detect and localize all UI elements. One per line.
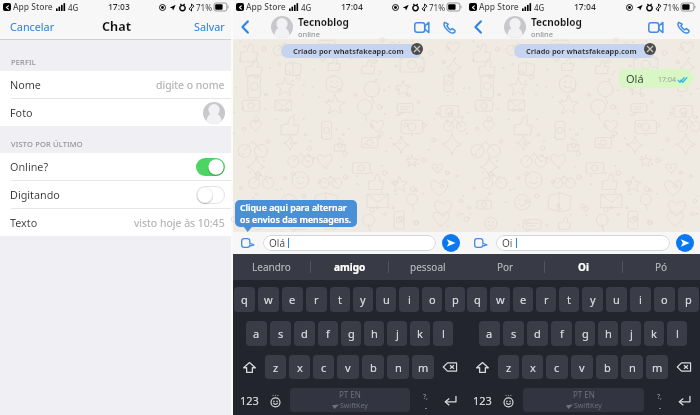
button[interactable]: Send	[676, 234, 694, 252]
button[interactable]: i	[630, 287, 651, 312]
button[interactable]: Toggle sender	[472, 236, 488, 250]
button[interactable]: t	[330, 287, 350, 312]
button[interactable]: Backspace	[434, 355, 466, 379]
button[interactable]: Symbols	[417, 392, 434, 409]
button[interactable]: Symbols	[651, 392, 668, 409]
button[interactable]: u	[606, 287, 627, 312]
button[interactable]: h	[364, 321, 384, 346]
button[interactable]: b	[362, 355, 384, 379]
button[interactable]: w	[258, 287, 279, 312]
button[interactable]: z	[265, 355, 286, 379]
button[interactable]: Backspace	[668, 355, 700, 379]
button[interactable]: Olá	[619, 69, 691, 88]
button[interactable]: o	[654, 287, 675, 312]
button[interactable]: Nome	[0, 71, 233, 98]
button[interactable]: e	[513, 287, 533, 312]
button[interactable]: Cancelar	[0, 15, 65, 38]
button[interactable]: m	[412, 355, 434, 379]
button[interactable]: j	[621, 321, 641, 346]
button[interactable]: Digitando	[0, 181, 233, 208]
button[interactable]: a	[246, 321, 267, 346]
button[interactable]: Texto	[0, 209, 233, 236]
button[interactable]: Voice call	[671, 15, 695, 39]
button[interactable]: PT EN	[523, 388, 644, 412]
button[interactable]: Enter	[673, 389, 695, 411]
button[interactable]: Enter	[439, 389, 461, 411]
button[interactable]: y	[582, 287, 603, 312]
button[interactable]: w	[490, 287, 510, 312]
button[interactable]: Foto	[0, 99, 233, 126]
button[interactable]: v	[571, 355, 593, 379]
button[interactable]: r	[536, 287, 556, 312]
button[interactable]: PT EN	[290, 388, 410, 412]
button[interactable]: m	[646, 355, 668, 379]
button[interactable]: Oi	[496, 235, 670, 251]
button[interactable]: d	[294, 321, 315, 346]
button[interactable]: u	[376, 287, 396, 312]
button[interactable]: h	[598, 321, 618, 346]
button[interactable]: l	[667, 321, 687, 346]
button[interactable]: Olá	[263, 235, 436, 251]
button[interactable]: Salvar	[186, 15, 233, 38]
button[interactable]: Back	[466, 14, 489, 39]
button[interactable]: Shift	[466, 355, 498, 379]
button[interactable]: 123	[238, 390, 261, 410]
button[interactable]: Toggle on	[196, 158, 225, 176]
button[interactable]: Back	[233, 14, 256, 39]
button[interactable]: q	[234, 287, 255, 312]
button[interactable]: Toggle sender	[239, 236, 255, 250]
button[interactable]: e	[282, 287, 303, 312]
button[interactable]: Toggle off	[196, 186, 225, 204]
button[interactable]: Video call	[643, 15, 667, 39]
button[interactable]: i	[399, 287, 419, 312]
button[interactable]: n	[621, 355, 643, 379]
button[interactable]: Oi	[545, 254, 622, 280]
button[interactable]: y	[353, 287, 373, 312]
button[interactable]: k	[644, 321, 664, 346]
button[interactable]: c	[313, 355, 334, 379]
button[interactable]: Leandro	[233, 254, 310, 280]
button[interactable]: g	[575, 321, 595, 346]
button[interactable]: r	[306, 287, 327, 312]
button[interactable]: o	[422, 287, 442, 312]
button[interactable]: q	[467, 287, 487, 312]
button[interactable]: k	[410, 321, 430, 346]
button[interactable]: f	[551, 321, 572, 346]
button[interactable]: g	[341, 321, 361, 346]
button[interactable]: 123	[471, 390, 494, 410]
staticText: v	[579, 360, 585, 375]
button[interactable]: x	[289, 355, 310, 379]
button[interactable]: f	[318, 321, 338, 346]
button[interactable]: d	[527, 321, 548, 346]
button[interactable]: Emoji	[267, 392, 284, 409]
button[interactable]: Pó	[623, 254, 700, 280]
button[interactable]: Criado por whatsfakeapp.com	[281, 44, 422, 58]
button[interactable]: Close	[644, 43, 656, 55]
button[interactable]: p	[678, 287, 699, 312]
button[interactable]: Send	[442, 234, 460, 252]
button[interactable]: v	[337, 355, 359, 379]
button[interactable]: l	[433, 321, 453, 346]
button[interactable]: p	[445, 287, 465, 312]
button[interactable]: Video call	[409, 15, 433, 39]
button[interactable]: a	[479, 321, 500, 346]
button[interactable]: s	[270, 321, 291, 346]
button[interactable]: amigo	[311, 254, 388, 280]
button[interactable]: Clique aqui para alternar os envios das …	[235, 200, 357, 227]
button[interactable]: Close	[411, 43, 423, 55]
button[interactable]: Shift	[233, 355, 265, 379]
button[interactable]: pessoal	[389, 254, 466, 280]
button[interactable]: Voice call	[437, 15, 461, 39]
button[interactable]: t	[559, 287, 579, 312]
button[interactable]: z	[498, 355, 519, 379]
button[interactable]: x	[522, 355, 543, 379]
button[interactable]: s	[503, 321, 524, 346]
button[interactable]: j	[387, 321, 407, 346]
button[interactable]: Online?	[0, 153, 233, 180]
button[interactable]: b	[596, 355, 618, 379]
button[interactable]: Por	[466, 254, 544, 280]
button[interactable]: n	[387, 355, 409, 379]
button[interactable]: c	[546, 355, 568, 379]
button[interactable]: Criado por whatsfakeapp.com	[514, 44, 655, 58]
button[interactable]: Emoji	[500, 392, 517, 409]
